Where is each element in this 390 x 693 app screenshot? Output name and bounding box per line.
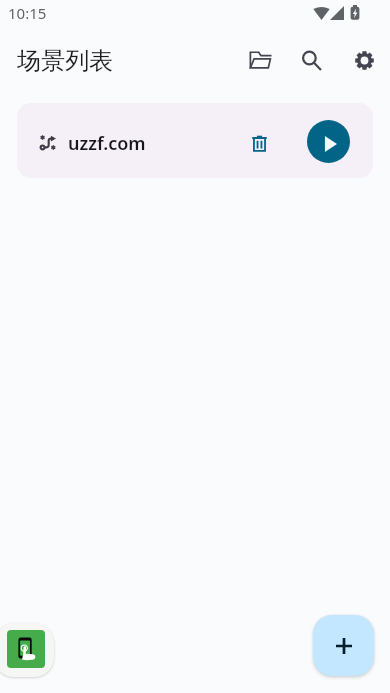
button[interactable]: Delete bbox=[239, 123, 279, 163]
staticText: 场景列表 bbox=[17, 46, 113, 76]
button[interactable]: uzzf.com bbox=[17, 103, 373, 178]
button[interactable]: Auto click shortcut bbox=[0, 623, 54, 677]
button[interactable]: Open folder bbox=[236, 36, 284, 84]
button[interactable]: Add scene bbox=[313, 615, 374, 676]
button[interactable]: Play bbox=[307, 120, 350, 163]
staticText: uzzf.com bbox=[68, 131, 146, 156]
button[interactable]: Search bbox=[287, 36, 335, 84]
staticText: 10:15 bbox=[8, 3, 47, 23]
button[interactable]: Settings bbox=[340, 36, 388, 84]
